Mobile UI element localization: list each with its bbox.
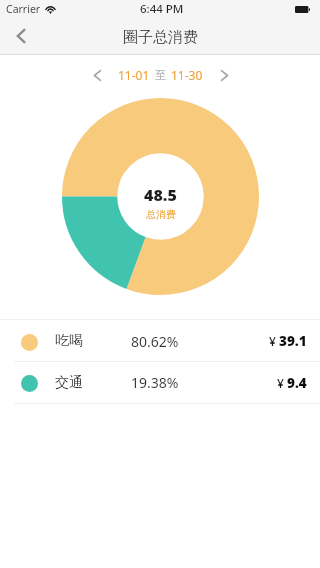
staticText: Carrier (6, 2, 41, 16)
staticText: 80.62% (131, 332, 179, 351)
button[interactable]: 交通 (0, 362, 320, 403)
staticText: ¥ (269, 333, 276, 349)
staticText: ¥ (277, 375, 284, 391)
staticText: 11-01 (118, 67, 150, 83)
button[interactable]: Previous period (84, 61, 110, 89)
staticText: 19.38% (131, 373, 179, 392)
button[interactable]: Back (0, 19, 42, 53)
staticText: 39.1 (279, 332, 307, 350)
staticText: 吃喝 (55, 332, 83, 350)
staticText: 6:44 PM (140, 1, 184, 17)
staticText: 9.4 (287, 374, 307, 392)
staticText: 48.5 (144, 184, 177, 206)
button[interactable]: 吃喝 (0, 320, 320, 362)
staticText: 11-30 (171, 67, 203, 83)
button[interactable]: Next period (211, 61, 237, 89)
staticText: 交通 (55, 374, 83, 392)
staticText: 总消费 (146, 208, 176, 221)
staticText: 圈子总消费 (123, 28, 198, 47)
staticText: 至 (155, 68, 166, 82)
